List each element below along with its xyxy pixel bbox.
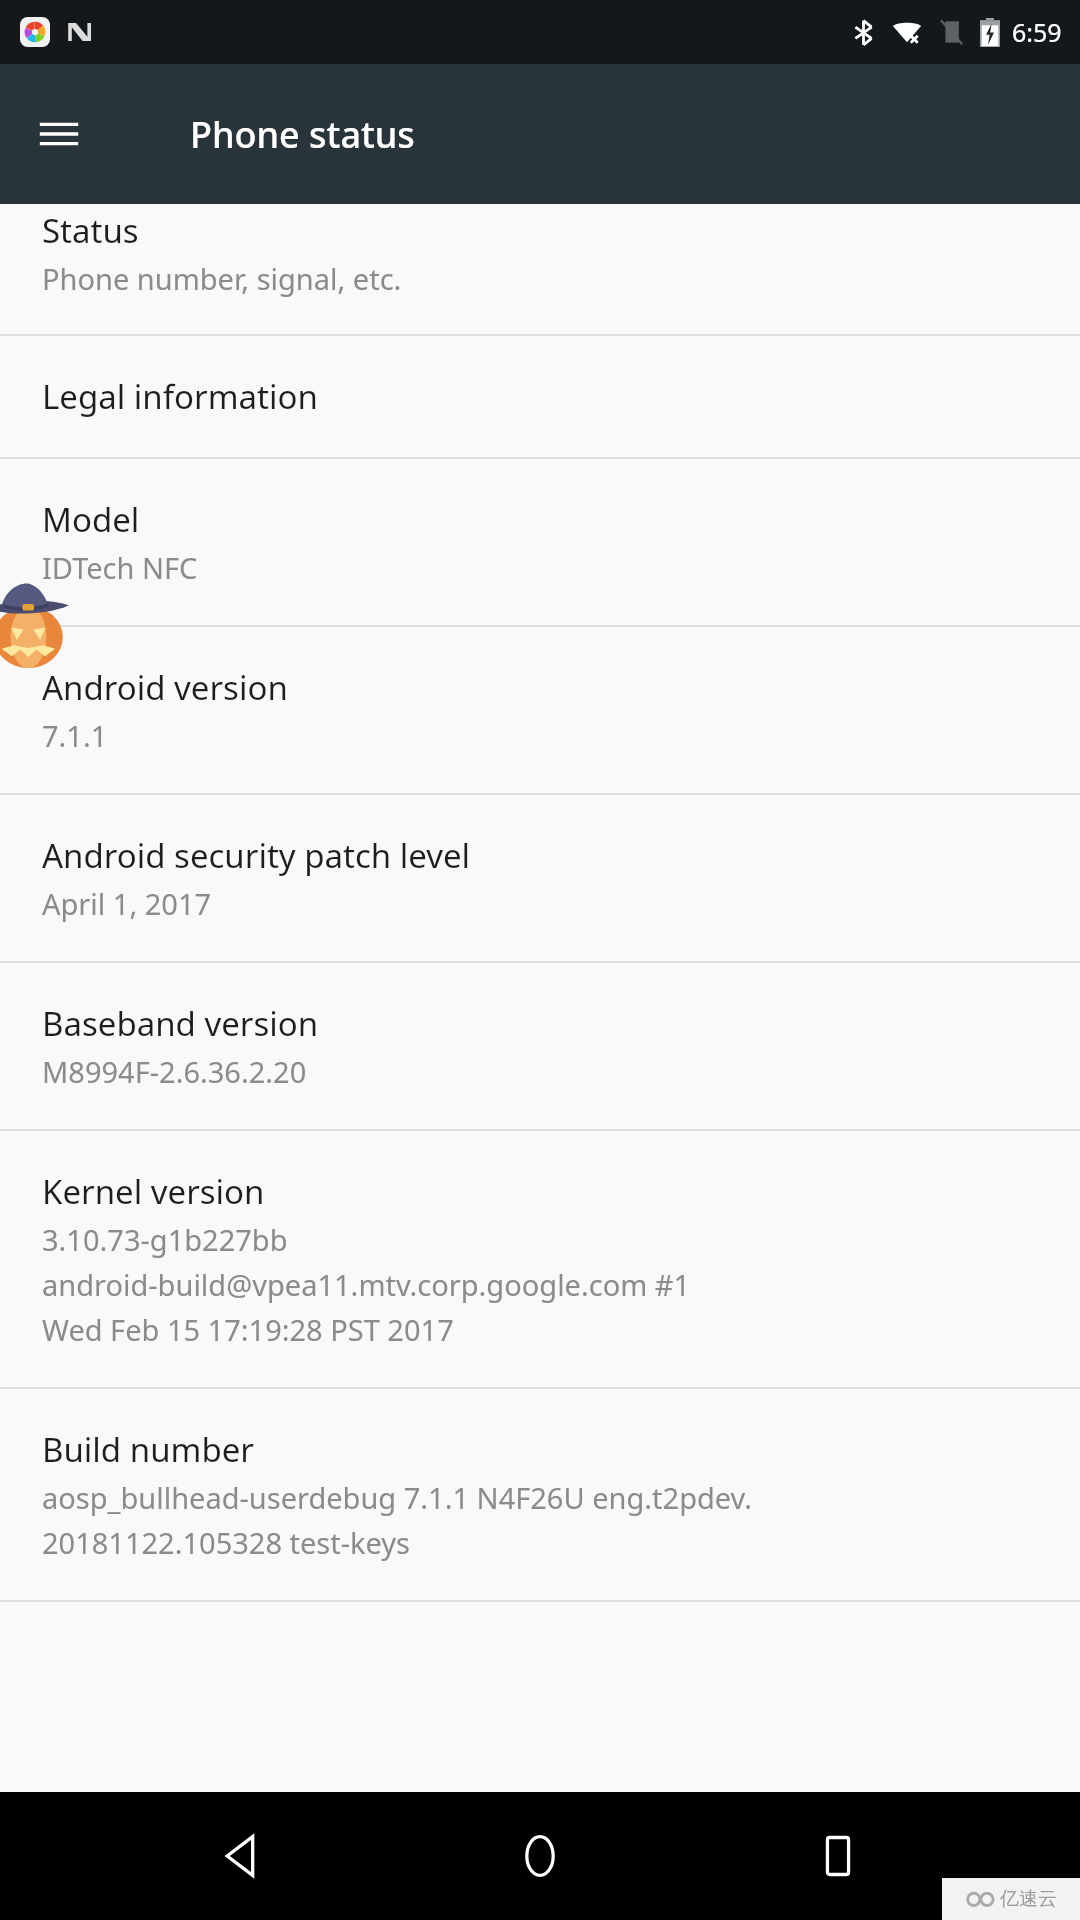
staticText: aosp_bullhead-userdebug 7.1.1 N4F26U eng…	[42, 1478, 752, 1517]
staticText: 20181122.105328 test-keys	[42, 1523, 411, 1562]
staticText: 亿速云	[1000, 1887, 1057, 1911]
button[interactable]: Back	[188, 1801, 298, 1911]
staticText: Wed Feb 15 17:19:28 PST 2017	[42, 1310, 454, 1349]
staticText: April 1, 2017	[42, 884, 212, 923]
button[interactable]: Recent apps	[783, 1801, 893, 1911]
staticText: Baseband version	[42, 1001, 319, 1046]
button[interactable]: Android security patch level	[0, 795, 1080, 961]
staticText: 6:59	[1012, 15, 1062, 49]
button[interactable]: Status	[0, 204, 1080, 334]
staticText: M8994F-2.6.36.2.20	[42, 1052, 307, 1091]
staticText: Kernel version	[42, 1169, 265, 1214]
staticText: Phone number, signal, etc.	[42, 259, 402, 298]
button[interactable]: Kernel version	[0, 1131, 1080, 1387]
staticText: Android version	[42, 665, 288, 710]
staticText: Android security patch level	[42, 833, 471, 878]
staticText: Phone status	[190, 110, 415, 159]
button[interactable]: Home	[485, 1801, 595, 1911]
staticText: Status	[42, 208, 139, 253]
staticText: android-build@vpea11.mtv.corp.google.com…	[42, 1265, 691, 1304]
button[interactable]: Legal information	[0, 336, 1080, 457]
button[interactable]: Open navigation menu	[26, 101, 92, 167]
staticText: 7.1.1	[42, 716, 108, 755]
button[interactable]: Baseband version	[0, 963, 1080, 1129]
staticText: 3.10.73-g1b227bb	[42, 1220, 288, 1259]
button[interactable]: Android version	[0, 627, 1080, 793]
staticText: IDTech NFC	[42, 548, 198, 587]
staticText: Model	[42, 497, 140, 542]
button[interactable]: Model	[0, 459, 1080, 625]
staticText: Legal information	[42, 374, 318, 419]
staticText: Build number	[42, 1427, 254, 1472]
button[interactable]: Build number	[0, 1389, 1080, 1600]
